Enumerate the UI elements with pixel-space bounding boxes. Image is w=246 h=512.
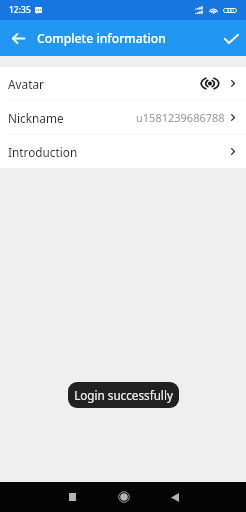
button[interactable]: Nickname — [0, 101, 246, 134]
staticText: u1581239686788 — [136, 110, 225, 125]
button[interactable]: Back — [6, 26, 31, 51]
button[interactable]: Back — [149, 482, 200, 512]
button[interactable]: Confirm — [219, 26, 244, 51]
staticText: Nickname — [8, 110, 64, 126]
button[interactable]: Home — [98, 482, 149, 512]
button[interactable]: Introduction — [0, 135, 246, 168]
button[interactable]: Avatar — [0, 67, 246, 100]
staticText: Login successfully — [74, 387, 173, 403]
staticText: Avatar — [8, 76, 44, 92]
button[interactable]: Recents — [47, 482, 98, 512]
staticText: Complete information — [37, 30, 166, 47]
staticText: 12:35 — [9, 4, 31, 16]
staticText: Introduction — [8, 144, 78, 160]
